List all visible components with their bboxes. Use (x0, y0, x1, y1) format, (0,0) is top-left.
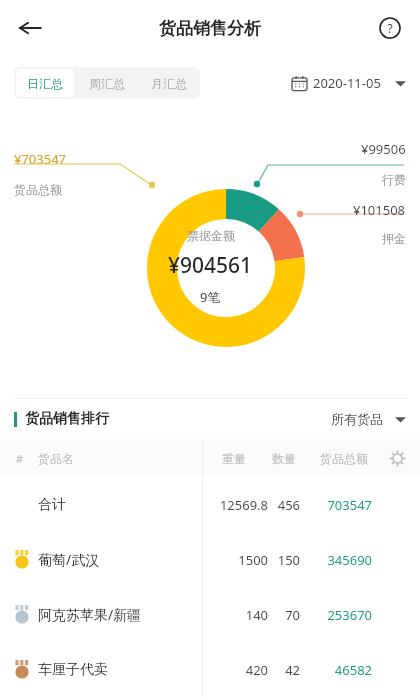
staticText: ¥101508 (353, 201, 406, 219)
staticText: 253670 (300, 606, 372, 624)
staticText: 阿克苏苹果/新疆 (38, 605, 142, 624)
button[interactable]: 月汇总 (140, 69, 198, 97)
staticText: 46582 (300, 661, 372, 679)
staticText: 42 (252, 661, 300, 679)
staticText: 12569.8 (196, 496, 268, 514)
staticText: 货品总额 (320, 451, 368, 466)
staticText: ¥703547 (14, 150, 67, 168)
button[interactable]: 日汇总 (16, 69, 74, 97)
staticText: 周汇总 (89, 76, 125, 91)
button[interactable]: 阿克苏苹果/新疆 (0, 587, 420, 642)
staticText: 所有货品 (331, 411, 383, 427)
button[interactable]: 所有货品 (331, 411, 406, 427)
staticText: 合计 (38, 496, 66, 514)
staticText: 70 (252, 606, 300, 624)
staticText: 车厘子代卖 (38, 661, 108, 679)
button[interactable]: Settings (384, 445, 410, 471)
staticText: 1500 (196, 551, 268, 569)
staticText: 日汇总 (27, 76, 63, 91)
staticText: # (16, 451, 24, 466)
staticText: 9笔 (200, 288, 221, 306)
staticText: 货品名 (38, 451, 74, 466)
staticText: 押金 (382, 231, 406, 246)
staticText: 票据金额 (187, 228, 235, 243)
button[interactable]: 合计 (0, 477, 420, 532)
staticText: 140 (196, 606, 268, 624)
staticText: 150 (252, 551, 300, 569)
staticText: 703547 (300, 496, 372, 514)
staticText: 货品销售排行 (25, 410, 109, 428)
staticText: ? (387, 20, 393, 36)
staticText: 2020-11-05 (313, 74, 381, 92)
staticText: 420 (196, 661, 268, 679)
button[interactable]: 周汇总 (78, 69, 136, 97)
button[interactable]: Back (8, 6, 52, 50)
staticText: ¥904561 (168, 251, 253, 280)
button[interactable]: 车厘子代卖 (0, 642, 420, 697)
staticText: ¥99506 (361, 140, 406, 158)
staticText: 重量 (222, 451, 246, 466)
button[interactable]: Help (370, 8, 410, 48)
staticText: 货品销售分析 (159, 18, 261, 39)
staticText: 月汇总 (151, 76, 187, 91)
button[interactable]: 葡萄/武汉 (0, 532, 420, 587)
staticText: 数量 (272, 451, 296, 466)
staticText: 行费 (382, 172, 406, 187)
staticText: 345690 (300, 551, 372, 569)
staticText: 货品总额 (14, 182, 62, 197)
button[interactable]: 2020-11-05 (292, 68, 406, 98)
staticText: 葡萄/武汉 (38, 550, 100, 569)
staticText: 456 (252, 496, 300, 514)
